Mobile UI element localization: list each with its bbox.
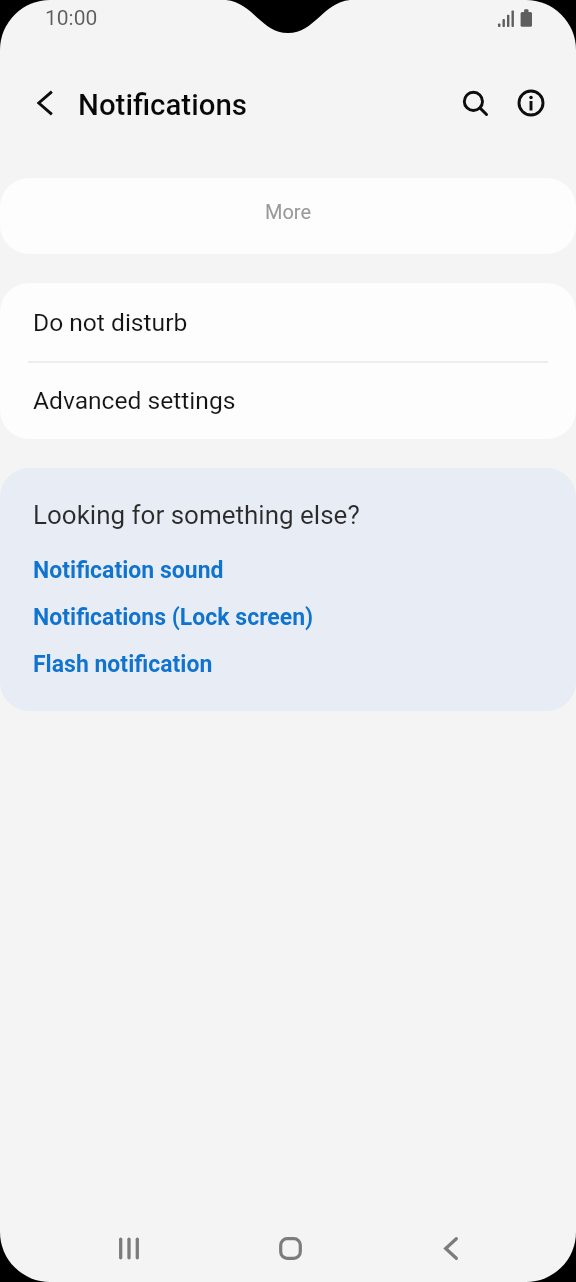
button[interactable]: Notification sound: [21, 549, 236, 591]
button[interactable]: Navigate up: [20, 79, 68, 127]
staticText: Do not disturb: [33, 308, 188, 337]
button[interactable]: Home: [245, 1213, 335, 1282]
button[interactable]: More: [0, 178, 576, 254]
staticText: 10:00: [45, 6, 98, 31]
staticText: Flash notification: [33, 651, 213, 678]
button[interactable]: Flash notification: [21, 643, 225, 685]
staticText: More: [265, 200, 312, 223]
button[interactable]: Search: [448, 79, 496, 127]
staticText: Advanced settings: [33, 386, 236, 415]
staticText: Notification sound: [33, 557, 224, 584]
button[interactable]: Back: [406, 1213, 496, 1282]
button[interactable]: Advanced settings: [0, 361, 576, 439]
button[interactable]: Recent apps: [84, 1213, 174, 1282]
button[interactable]: Do not disturb: [0, 283, 576, 361]
button[interactable]: Notifications (Lock screen): [21, 596, 326, 638]
staticText: Looking for something else?: [33, 500, 360, 530]
button[interactable]: Information: [507, 79, 555, 127]
staticText: Notifications (Lock screen): [33, 604, 314, 631]
staticText: Notifications: [78, 88, 247, 122]
